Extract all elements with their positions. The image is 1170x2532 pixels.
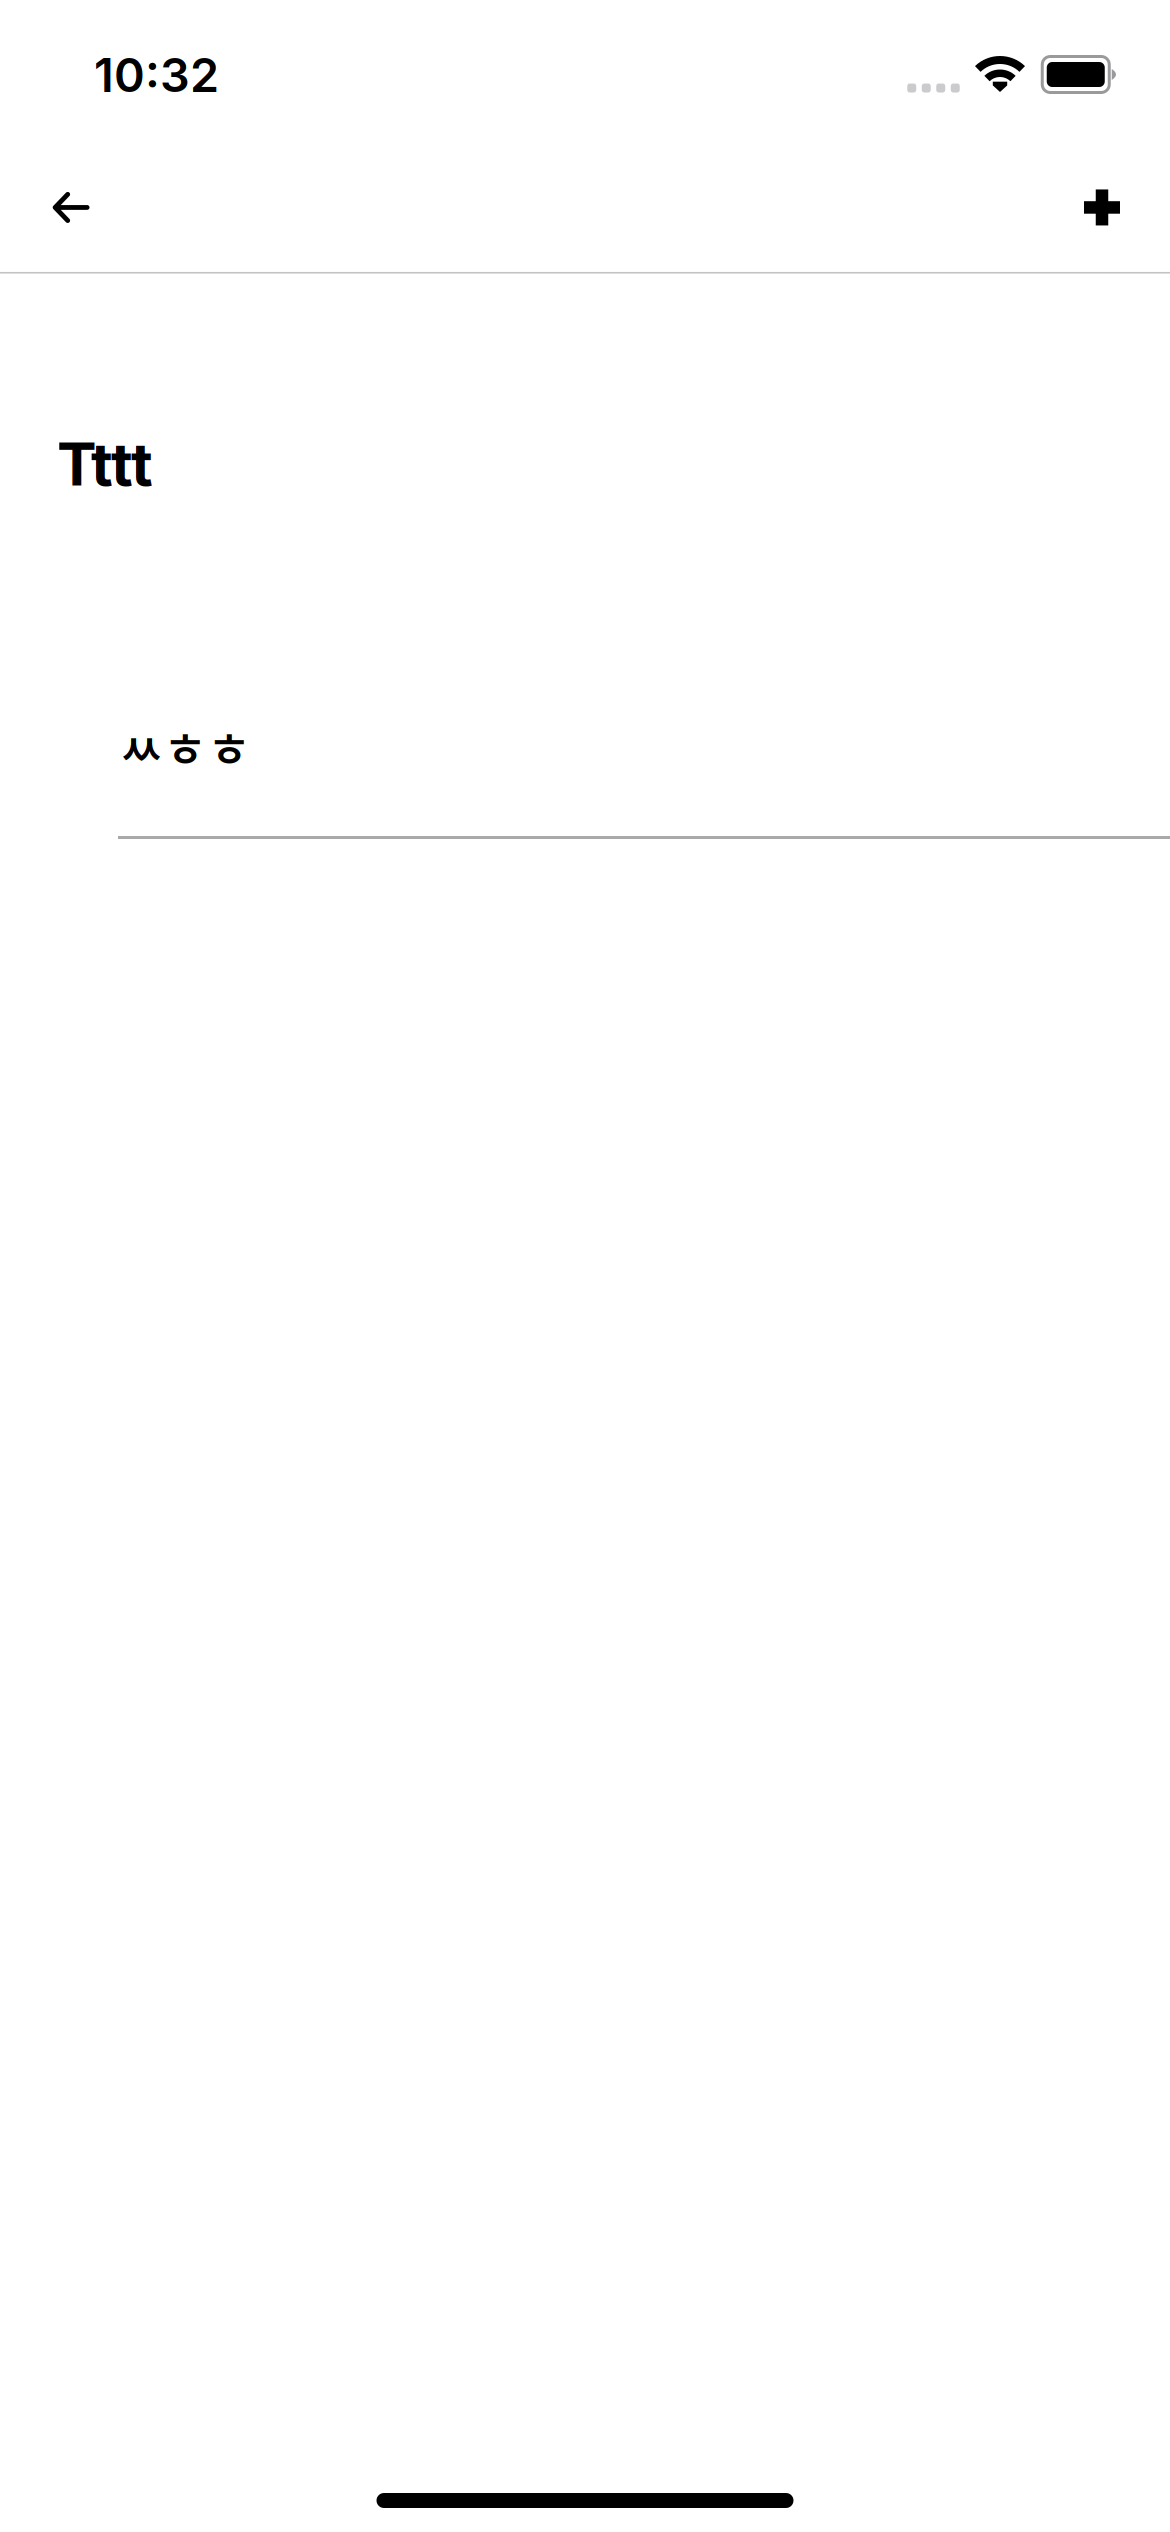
navigationBar: Tttt [0,148,1170,274]
button[interactable]: Back [0,148,142,266]
staticText: ㅆㅎㅎ [119,711,251,781]
staticText: Tttt [57,428,153,500]
staticText: 10:32 [94,47,219,103]
button[interactable]: ㅆㅎㅎ [0,654,1170,839]
button[interactable]: Add [1034,149,1170,265]
